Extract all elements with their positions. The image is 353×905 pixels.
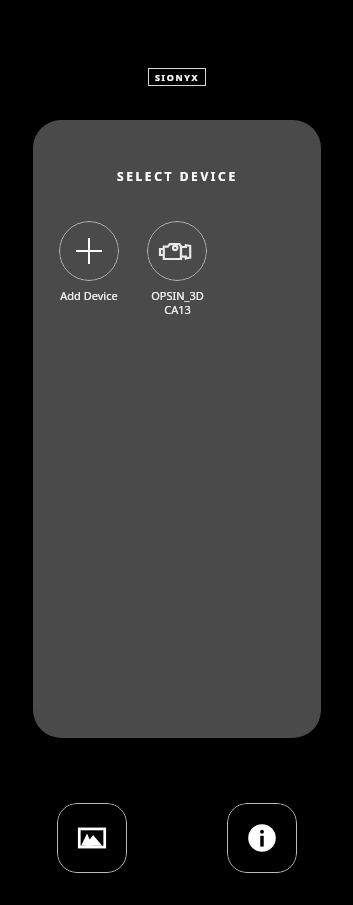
staticText: SIONYX [155, 71, 200, 83]
button[interactable]: Add Device [53, 221, 125, 303]
staticText: Add Device [60, 288, 118, 303]
staticText: OPSIN_3D CA13 [151, 288, 204, 317]
button[interactable]: Gallery [57, 803, 127, 873]
staticText: SELECT DEVICE [117, 168, 238, 184]
button[interactable]: OPSIN_3D CA13 [141, 221, 213, 317]
button[interactable]: Info [227, 803, 297, 873]
